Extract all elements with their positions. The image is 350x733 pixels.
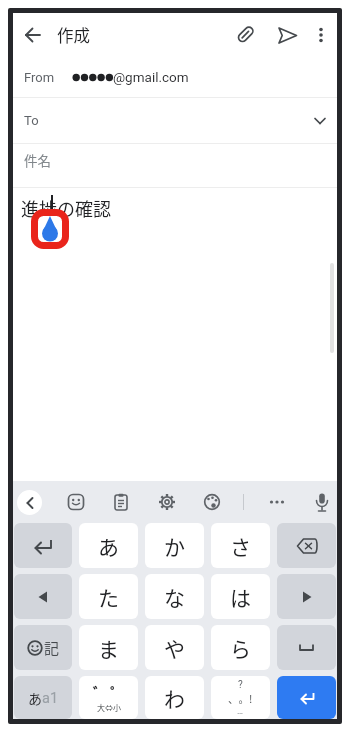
button[interactable]: ら — [211, 625, 270, 670]
button[interactable]: To — [13, 98, 337, 143]
staticText: 記 — [44, 637, 60, 659]
button[interactable] — [277, 523, 336, 568]
button[interactable] — [13, 13, 53, 57]
button[interactable] — [200, 490, 224, 514]
button[interactable] — [14, 574, 72, 619]
staticText: ゛ ゜ — [93, 682, 125, 702]
button[interactable]: か — [145, 523, 204, 568]
staticText: ら — [230, 633, 251, 663]
staticText: な — [164, 582, 185, 612]
staticText: ? — [238, 679, 243, 691]
staticText: さ — [230, 531, 251, 561]
staticText: a1 — [42, 690, 59, 707]
staticText: 、。! — [228, 691, 253, 706]
button[interactable] — [277, 574, 336, 619]
button[interactable] — [307, 13, 335, 57]
staticText: … — [237, 706, 244, 717]
button[interactable]: ま — [79, 625, 138, 670]
staticText: は — [230, 582, 251, 612]
button[interactable]: あ — [79, 523, 138, 568]
button[interactable]: ? — [211, 676, 270, 719]
button[interactable]: さ — [211, 523, 270, 568]
button[interactable] — [310, 490, 334, 514]
staticText: 件名 — [24, 150, 51, 170]
button[interactable]: ゛ ゜ — [79, 676, 138, 719]
button[interactable] — [267, 13, 307, 57]
button[interactable]: あ — [14, 676, 72, 719]
button[interactable] — [277, 676, 336, 719]
staticText: 進捗の確認 — [21, 195, 111, 221]
button[interactable]: た — [79, 574, 138, 619]
staticText: 作成 — [57, 23, 90, 47]
staticText: あ — [28, 688, 42, 708]
staticText: た — [98, 582, 119, 612]
button[interactable]: は — [211, 574, 270, 619]
staticText: か — [164, 531, 185, 561]
staticText: To — [24, 113, 39, 128]
staticText: わ — [164, 683, 185, 713]
staticText: あ — [98, 531, 119, 561]
staticText: @gmail.com — [113, 69, 189, 85]
button[interactable] — [155, 490, 179, 514]
staticText: ま — [98, 633, 119, 663]
staticText: や — [164, 633, 185, 663]
button[interactable]: や — [145, 625, 204, 670]
button[interactable] — [265, 490, 289, 514]
button[interactable]: 記 — [14, 625, 72, 670]
button[interactable] — [109, 490, 133, 514]
staticText: From — [24, 70, 55, 85]
staticText: 大⇔小 — [97, 702, 121, 714]
button[interactable]: From — [13, 57, 337, 97]
button[interactable] — [17, 490, 42, 515]
button[interactable]: わ — [145, 676, 204, 719]
button[interactable] — [64, 490, 88, 514]
button[interactable] — [14, 523, 72, 568]
button[interactable] — [277, 625, 336, 670]
button[interactable]: な — [145, 574, 204, 619]
button[interactable] — [225, 13, 265, 57]
button[interactable]: 件名 — [13, 144, 337, 187]
button[interactable]: 進捗の確認 — [13, 188, 337, 481]
